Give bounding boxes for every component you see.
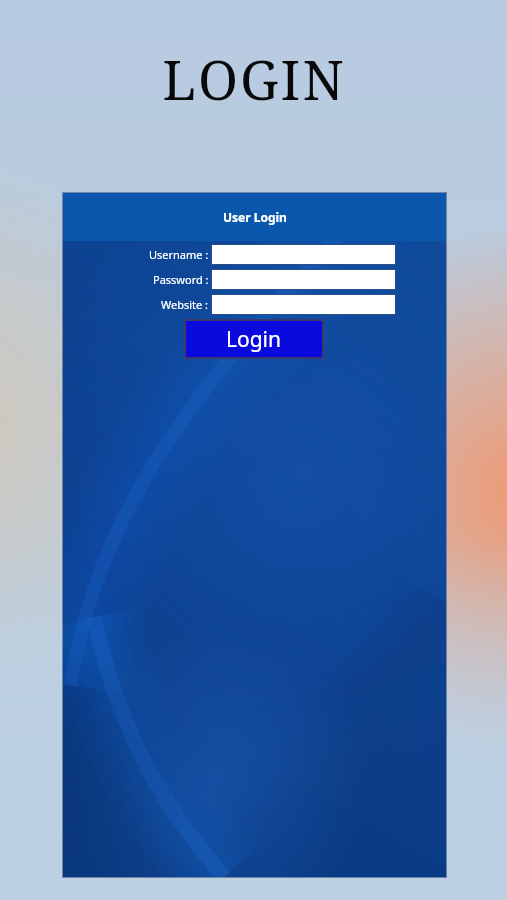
button[interactable]: Login (184, 319, 324, 359)
staticText: Login (226, 325, 282, 354)
staticText: LOGIN (162, 42, 346, 116)
button[interactable] (211, 269, 396, 290)
button[interactable] (211, 294, 396, 315)
staticText: User Login (223, 209, 287, 225)
staticText: Username : (149, 247, 209, 262)
staticText: Website : (161, 297, 209, 312)
button[interactable] (211, 244, 396, 265)
staticText: Password : (153, 272, 209, 287)
